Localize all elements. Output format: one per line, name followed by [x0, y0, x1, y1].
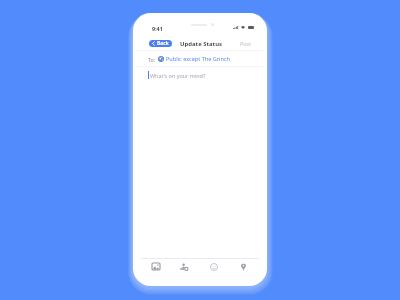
- staticText: What's on your mind?: [150, 72, 206, 79]
- staticText: Back: [157, 40, 169, 47]
- button[interactable]: Check in: [232, 258, 254, 275]
- button[interactable]: Post: [240, 40, 252, 47]
- button[interactable]: Public except The Grinch: [166, 55, 231, 63]
- button[interactable]: Feeling: [203, 258, 225, 275]
- button[interactable]: Add photo: [145, 258, 167, 275]
- button[interactable]: Back: [149, 40, 172, 47]
- staticText: To:: [148, 56, 156, 63]
- button[interactable]: Tag people: [173, 258, 195, 275]
- staticText: 9:41: [152, 25, 163, 32]
- staticText: Update Status: [180, 40, 223, 48]
